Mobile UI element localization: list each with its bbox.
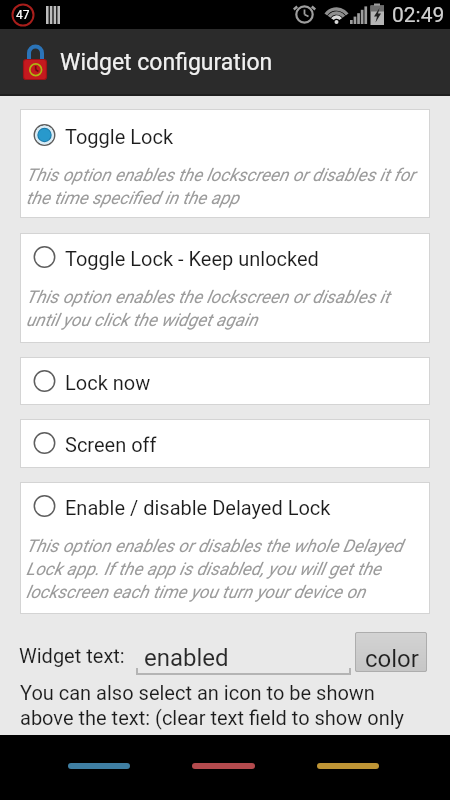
staticText: This option enables the lockscreen or di… <box>26 287 390 308</box>
staticText: Lock now <box>65 371 151 394</box>
staticText: color <box>365 645 419 673</box>
staticText: Widget text: <box>19 644 125 667</box>
staticText: Lock app. If the app is disabled, you wi… <box>26 559 382 580</box>
staticText: enabled <box>144 644 229 672</box>
button[interactable] <box>20 109 430 218</box>
button[interactable] <box>20 233 430 343</box>
staticText: Toggle Lock <box>65 125 174 148</box>
button[interactable] <box>20 419 430 468</box>
button[interactable] <box>68 763 130 769</box>
staticText: Enable / disable Delayed Lock <box>65 496 331 519</box>
button[interactable] <box>192 763 255 769</box>
staticText: until you click the widget again <box>26 310 258 331</box>
staticText: 47 <box>16 8 30 22</box>
staticText: Widget configuration <box>60 49 273 76</box>
staticText: This option enables or disables the whol… <box>26 536 403 557</box>
staticText: This option enables the lockscreen or di… <box>26 165 416 186</box>
button[interactable]: enabled <box>136 634 352 676</box>
button[interactable]: color <box>355 632 427 672</box>
staticText: Toggle Lock - Keep unlocked <box>65 247 319 270</box>
button[interactable] <box>20 482 430 614</box>
staticText: the time specified in the app <box>26 188 239 209</box>
staticText: You can also select an icon to be shown … <box>20 681 405 730</box>
button[interactable] <box>317 763 379 769</box>
button[interactable] <box>20 357 430 405</box>
staticText: lockscreen each time you turn your devic… <box>26 582 366 603</box>
staticText: Screen off <box>65 433 157 456</box>
staticText: 02:49 <box>392 3 445 28</box>
